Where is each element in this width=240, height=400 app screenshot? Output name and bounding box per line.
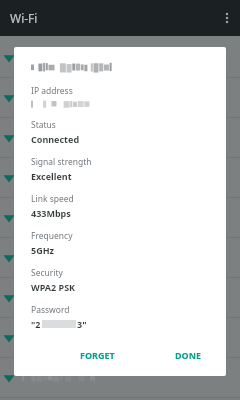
staticText: Password [31,304,70,316]
staticText: 5GHz [31,244,54,256]
staticText: Signal strength [31,156,92,168]
staticText: Excellent [31,170,72,182]
staticText: IP address [31,85,73,97]
staticText: Security [31,267,63,279]
staticText: Status [31,119,56,131]
staticText: WPA2 PSK [31,281,76,293]
button[interactable]: More options [210,3,240,33]
staticText: Wi-Fi [10,10,38,26]
button[interactable] [0,198,240,238]
staticText: FORGET [80,349,115,361]
button[interactable] [0,318,240,358]
staticText: 3" [77,318,87,330]
button[interactable] [0,38,240,78]
button[interactable] [0,118,240,158]
staticText: Connected [31,133,80,145]
button[interactable] [0,78,240,118]
staticText: Frequency [31,230,73,242]
button[interactable] [0,358,240,398]
staticText: "2 [31,318,41,330]
staticText: DONE [175,349,202,361]
button[interactable] [0,238,240,278]
button[interactable] [0,278,240,318]
button[interactable] [0,158,240,198]
button[interactable]: DONE [167,343,210,367]
staticText: 433Mbps [31,207,71,219]
button[interactable]: FORGET [72,343,123,367]
staticText: Link speed [31,193,74,205]
